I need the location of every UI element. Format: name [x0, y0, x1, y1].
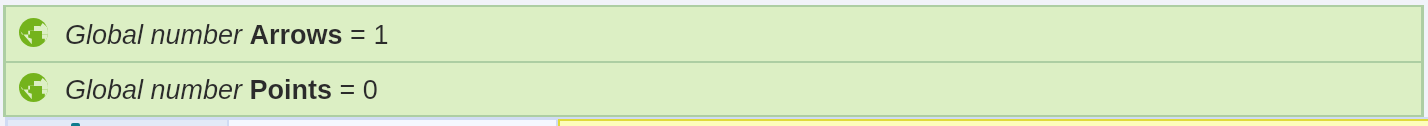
- staticText: Global number Points = 0: [65, 75, 378, 105]
- button[interactable]: [558, 119, 1428, 126]
- button[interactable]: Global variable: [6, 7, 1421, 61]
- other: Global variable: [19, 18, 48, 47]
- other: Global variable: [19, 73, 48, 102]
- button[interactable]: [8, 120, 227, 126]
- button[interactable]: Global variable: [6, 63, 1421, 115]
- staticText: Global number Arrows = 1: [65, 20, 389, 50]
